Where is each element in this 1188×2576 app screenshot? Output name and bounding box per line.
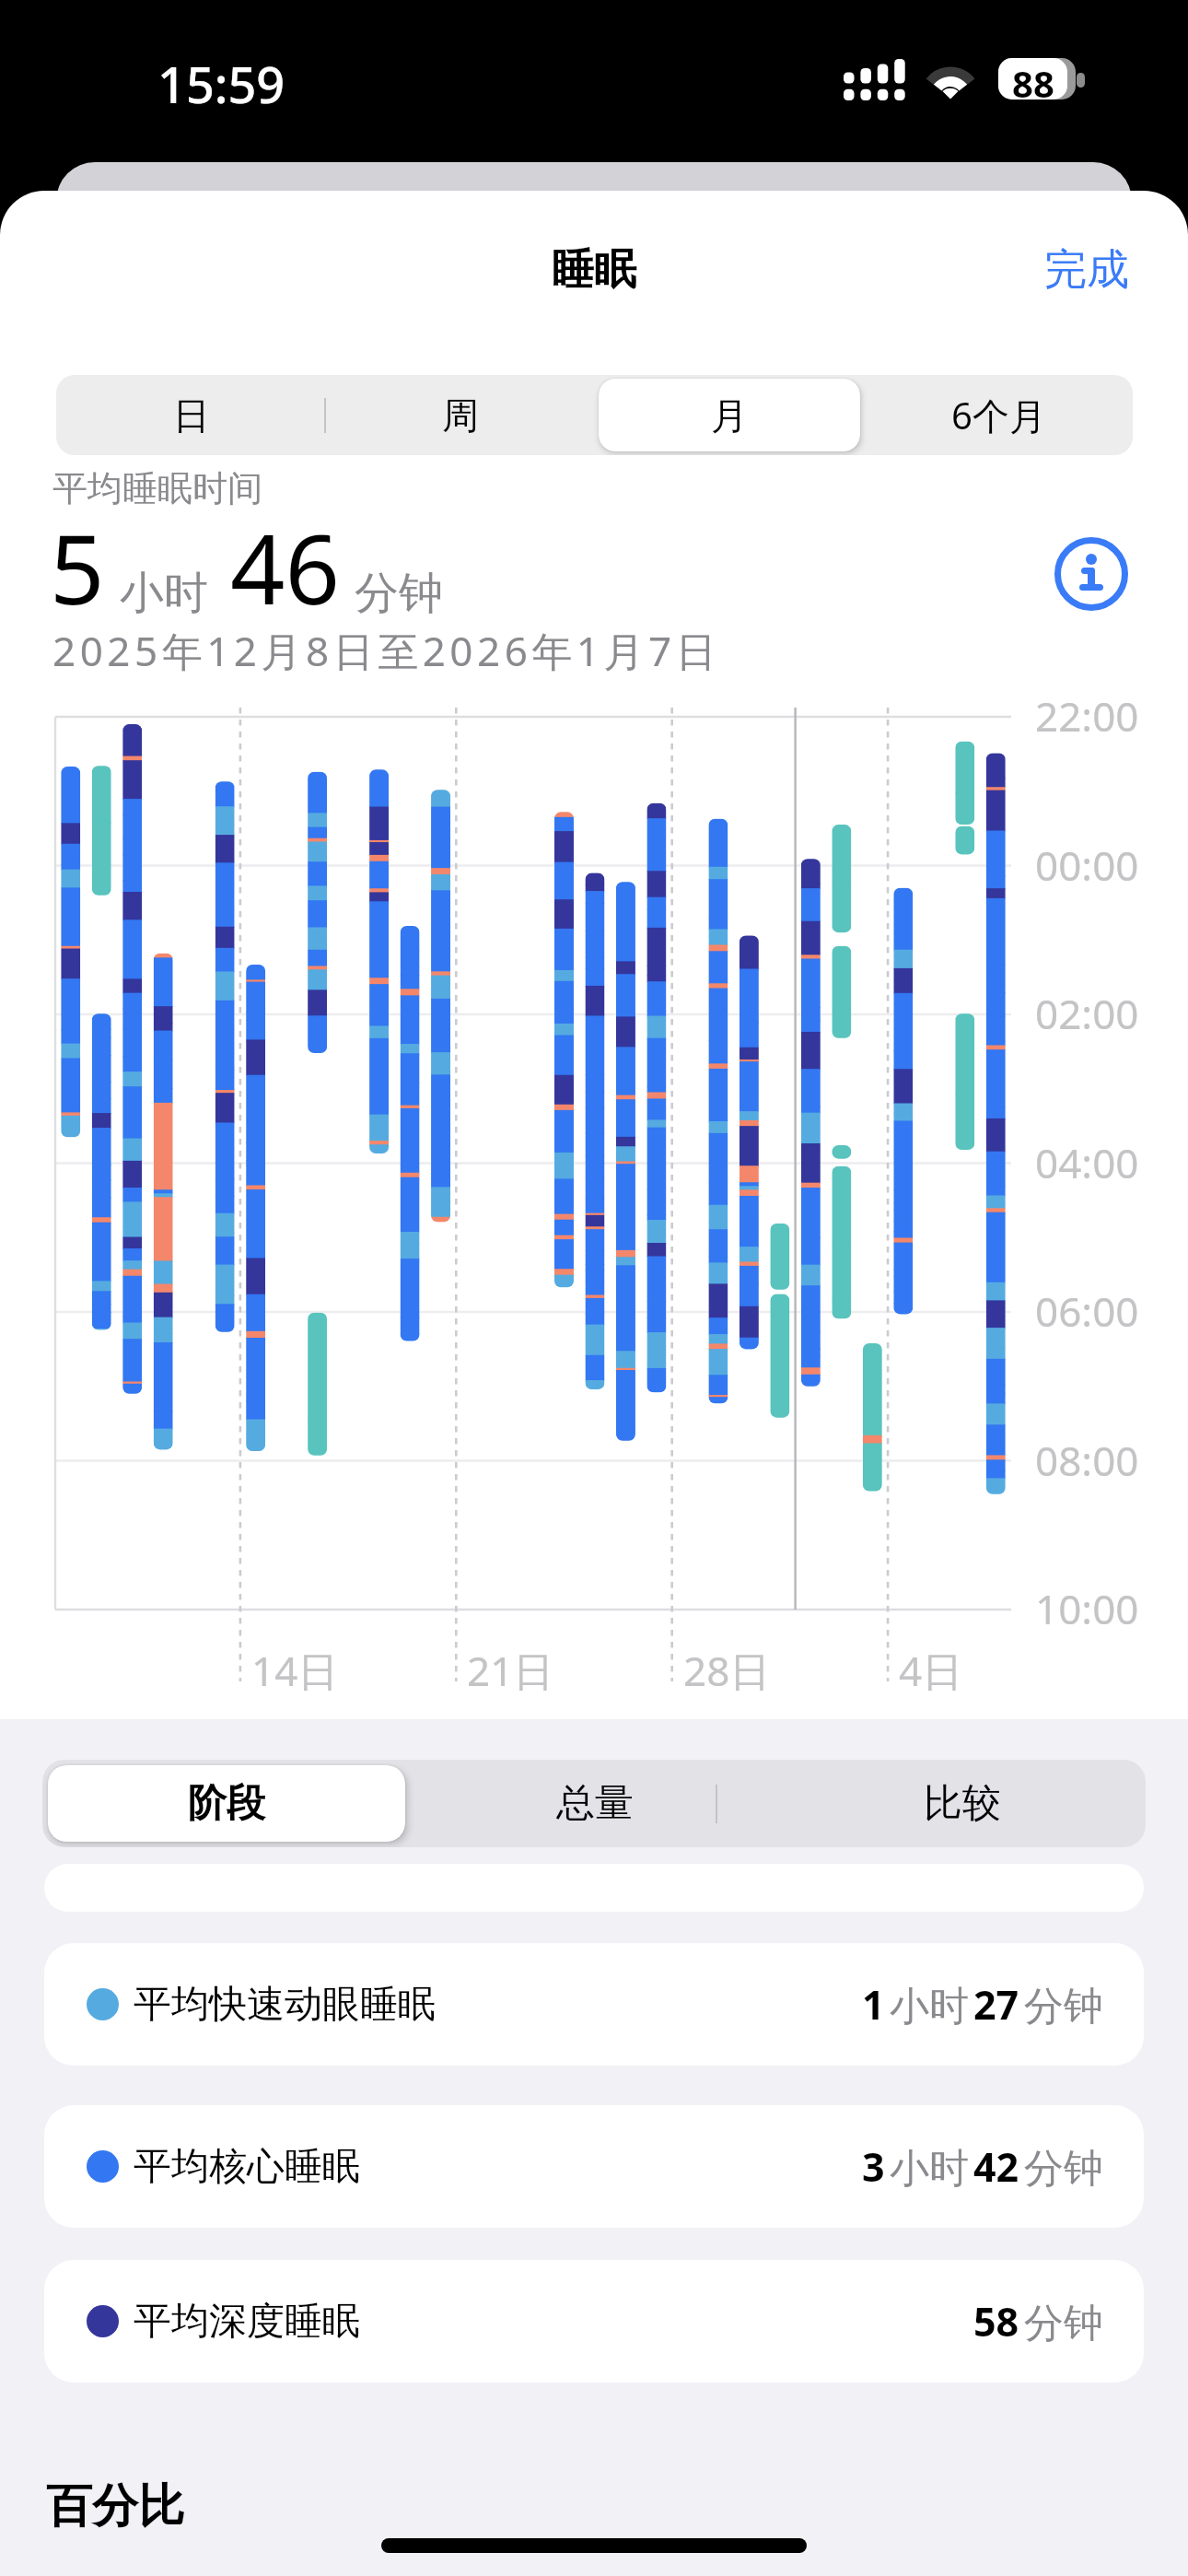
staticText: 15:59 [157,50,285,118]
staticText: 3 [862,2139,885,2194]
staticText: 阶段 [188,1779,265,1828]
button[interactable]: 阶段 [48,1765,405,1842]
button[interactable]: 完成 [1000,223,1173,317]
staticText: 平均睡眠时间 [52,466,262,510]
staticText: 06:00 [1035,1283,1139,1339]
staticText: 比较 [924,1779,1001,1828]
button[interactable]: 比较 [784,1765,1140,1842]
staticText: 27 [973,1977,1019,2032]
staticText: 2025年12月8日至2026年1月7日 [52,623,721,678]
staticText: 28日 [683,1643,771,1698]
staticText: 百分比 [46,2477,184,2535]
staticText: 00:00 [1035,837,1139,893]
staticText: 14日 [251,1643,339,1698]
button[interactable]: 平均快速动眼睡眠 [44,1943,1144,2066]
staticText: 4日 [899,1643,963,1698]
staticText: 10:00 [1035,1581,1139,1636]
staticText: 平均深度睡眠 [134,2298,360,2346]
staticText: 日 [173,392,210,439]
staticText: 21日 [467,1643,554,1698]
staticText: 04:00 [1035,1135,1139,1190]
staticText: 58 [973,2294,1019,2348]
button[interactable]: 总量 [416,1765,773,1842]
staticText: 分钟 [1024,2144,1103,2194]
staticText: 6个月 [951,390,1046,440]
button[interactable]: 日 [60,379,322,451]
staticText: 小时 [120,566,208,621]
staticText: 分钟 [1024,1982,1103,2032]
staticText: 月 [711,392,748,439]
button[interactable]: 周 [330,379,591,451]
staticText: 08:00 [1035,1433,1139,1488]
staticText: 周 [442,392,479,439]
staticText: 分钟 [1024,2299,1103,2348]
staticText: 睡眠 [552,243,636,297]
staticText: 1 [862,1977,885,2032]
staticText: 88 [1012,58,1054,108]
button[interactable]: 平均深度睡眠 [44,2260,1144,2383]
staticText: 42 [973,2139,1019,2194]
staticText: 完成 [1044,243,1129,297]
button[interactable]: 平均核心睡眠 [44,2105,1144,2228]
staticText: 22:00 [1035,688,1139,744]
staticText: 5 [50,502,105,633]
staticText: 02:00 [1035,986,1139,1041]
staticText: 平均快速动眼睡眠 [134,1981,436,2029]
staticText: 小时 [890,1982,969,2032]
staticText: 平均核心睡眠 [134,2143,360,2191]
staticText: 总量 [556,1779,634,1828]
button[interactable]: 信息 [1049,532,1134,616]
staticText: 分钟 [355,566,443,621]
button[interactable]: 6个月 [868,379,1129,451]
staticText: 小时 [890,2144,969,2194]
staticText: 46 [230,502,340,633]
button[interactable]: 月 [599,379,860,451]
